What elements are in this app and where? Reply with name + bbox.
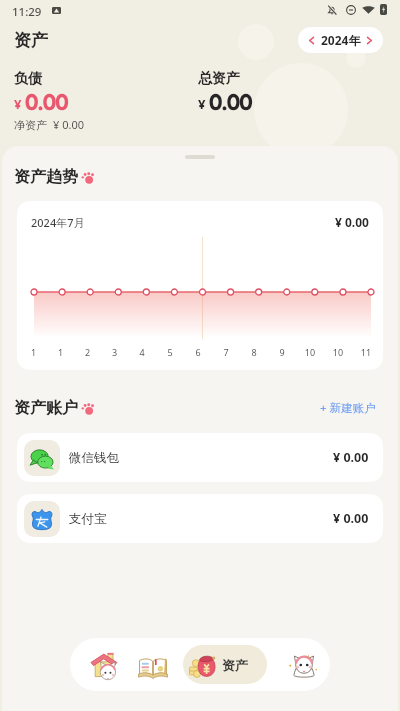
other: Next year bbox=[365, 36, 374, 45]
staticText: ¥ 0.00 bbox=[333, 510, 369, 527]
button[interactable]: 资产 bbox=[183, 645, 267, 684]
staticText: 0.00 bbox=[209, 92, 252, 116]
staticText: 11 bbox=[352, 346, 380, 358]
staticText: ¥ 0.00 bbox=[333, 449, 369, 466]
staticText: 资产趋势 bbox=[14, 167, 78, 187]
staticText: 3 bbox=[101, 346, 128, 358]
staticText: 11:29 bbox=[12, 4, 42, 20]
staticText: 8 bbox=[240, 346, 268, 358]
button[interactable]: Home bbox=[85, 644, 126, 685]
button[interactable]: Ledger bbox=[132, 644, 173, 685]
staticText: 9 bbox=[268, 346, 296, 358]
staticText: 7 bbox=[212, 346, 240, 358]
staticText: ¥ 0.00 bbox=[335, 214, 369, 230]
staticText: 2024年7月 bbox=[31, 215, 85, 230]
staticText: 4 bbox=[128, 346, 156, 358]
staticText: ¥ bbox=[198, 95, 206, 113]
staticText: 6 bbox=[184, 346, 212, 358]
staticText: ¥ 0.00 bbox=[53, 117, 84, 132]
staticText: 资产 bbox=[14, 30, 48, 51]
staticText: 10 bbox=[324, 346, 352, 358]
button[interactable]: 支付宝 bbox=[17, 494, 383, 543]
staticText: 资产 bbox=[222, 657, 248, 673]
button[interactable]: Profile bbox=[283, 644, 324, 685]
button[interactable]: 微信钱包 bbox=[17, 433, 383, 482]
staticText: 总资产 bbox=[198, 70, 240, 88]
staticText: 10 bbox=[296, 346, 324, 358]
staticText: 2 bbox=[74, 346, 101, 358]
staticText: 负债 bbox=[14, 70, 42, 88]
staticText: ¥ bbox=[14, 95, 22, 113]
button[interactable]: + 新建账户 bbox=[318, 398, 378, 418]
staticText: 净资产 bbox=[14, 118, 47, 132]
staticText: + 新建账户 bbox=[320, 400, 376, 416]
staticText: 0.00 bbox=[25, 92, 68, 116]
staticText: 支付宝 bbox=[69, 511, 107, 527]
button[interactable]: Previous year bbox=[298, 27, 383, 53]
staticText: 微信钱包 bbox=[69, 450, 119, 466]
staticText: 资产账户 bbox=[14, 398, 78, 418]
staticText: 5 bbox=[156, 346, 184, 358]
staticText: 1 bbox=[47, 346, 74, 358]
other: Previous year bbox=[307, 36, 316, 45]
staticText: 2024年 bbox=[321, 32, 361, 48]
staticText: 1 bbox=[20, 346, 47, 358]
